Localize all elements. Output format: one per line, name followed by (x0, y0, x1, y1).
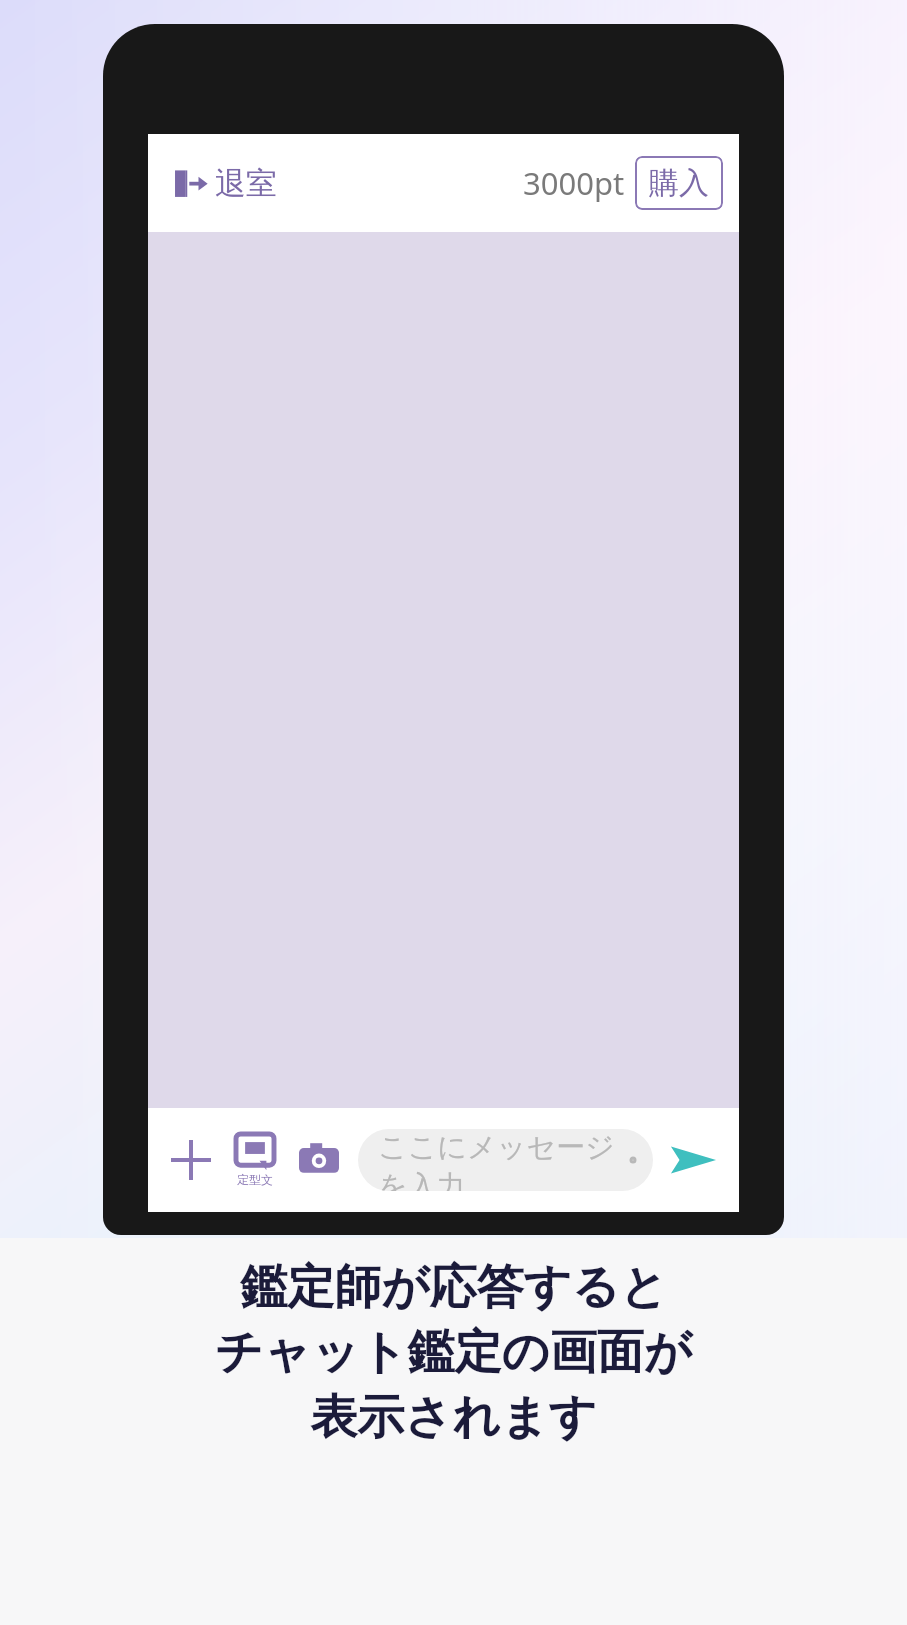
staticText: 退室 (215, 164, 277, 203)
staticText: 鑑定師が応答すると (240, 1258, 668, 1317)
button[interactable]: Camera (290, 1131, 348, 1189)
staticText: 表示されます (310, 1388, 597, 1447)
staticText: チャット鑑定の画面が (215, 1323, 692, 1382)
staticText: 定型文 (237, 1172, 273, 1187)
button[interactable]: 定型文 (226, 1131, 284, 1189)
button[interactable]: 退室 (170, 160, 281, 207)
button[interactable]: 購入 (635, 156, 723, 210)
button[interactable]: Send (661, 1128, 725, 1192)
button[interactable]: Add (162, 1131, 220, 1189)
staticText: 購入 (649, 164, 709, 202)
button[interactable]: ここにメッセージを入力 (358, 1129, 653, 1191)
staticText: ここにメッセージを入力 (378, 1129, 633, 1191)
staticText: 3000pt (523, 162, 625, 204)
